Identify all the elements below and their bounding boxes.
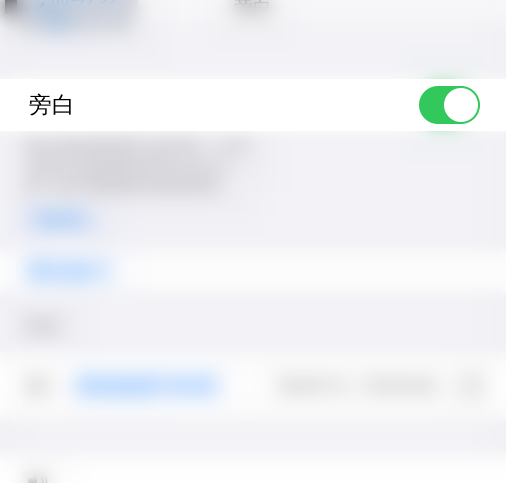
button[interactable]: VoiceOver practice [0, 249, 506, 294]
staticText: 在看不见屏幕时使用 iPhone。 [25, 155, 243, 176]
staticText: 朗读速度与语音 [78, 374, 218, 398]
button[interactable]: 了解更多… [25, 209, 102, 230]
button[interactable]: Back to Accessibility [10, 0, 138, 32]
staticText: 用一根手指触摸并拖移探索。 [25, 176, 233, 196]
button[interactable]: Speech rate and voice [0, 352, 506, 420]
staticText: 辅助功能 [48, 0, 117, 36]
button[interactable]: VoiceOver on [419, 86, 480, 124]
button[interactable]: More settings [0, 452, 506, 483]
staticText: 简体中文（中国大陆） [279, 375, 449, 397]
staticText: 旁白 [29, 91, 75, 119]
staticText: 旁白练习 [27, 258, 111, 285]
staticText: 了解更多… [25, 209, 102, 230]
staticText: 旁白会朗读屏幕上的内容，让你 [25, 135, 249, 155]
staticText: 旁白 [234, 0, 272, 18]
